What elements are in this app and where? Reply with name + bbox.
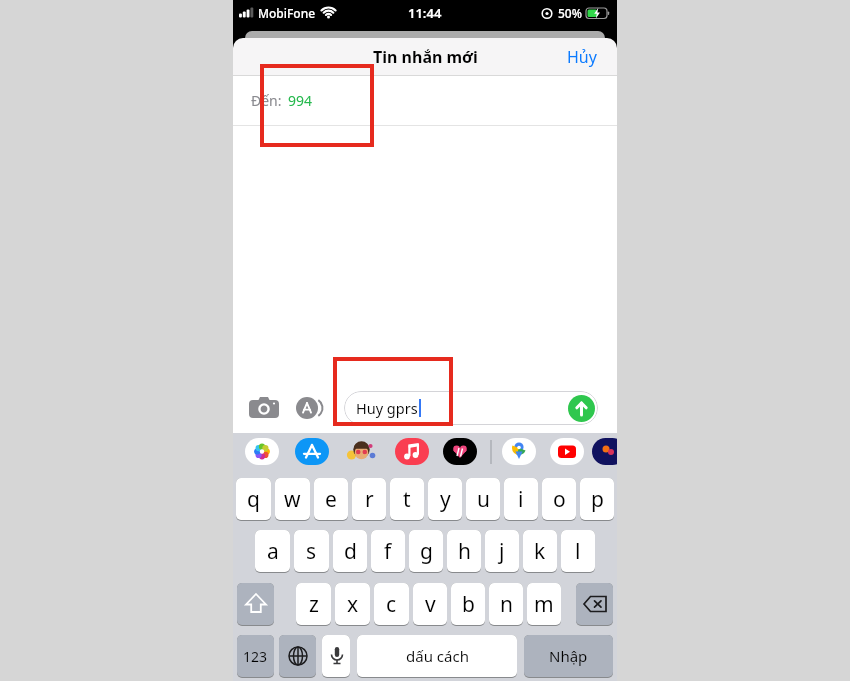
staticText: 50% (558, 5, 582, 21)
staticText: MobiFone (258, 5, 316, 21)
staticText: c (386, 590, 397, 619)
staticText: l (575, 537, 581, 566)
button[interactable]: o (542, 478, 576, 521)
button[interactable]: l (561, 530, 595, 573)
staticText: v (425, 590, 436, 619)
button[interactable] (237, 583, 274, 626)
button[interactable] (322, 635, 350, 678)
button[interactable]: t (390, 478, 424, 521)
staticText: y (440, 485, 451, 514)
staticText: w (284, 485, 301, 514)
staticText: u (477, 485, 490, 514)
staticText: p (591, 485, 604, 514)
staticText: Huy gprs (356, 398, 418, 418)
staticText: k (534, 537, 546, 566)
staticText: 994 (288, 91, 313, 110)
button[interactable]: y (428, 478, 462, 521)
button[interactable]: 123 (237, 635, 274, 678)
button[interactable]: dấu cách (357, 635, 517, 678)
staticText: 11:44 (408, 4, 442, 22)
staticText: z (309, 590, 319, 619)
button[interactable]: n (489, 583, 523, 626)
button[interactable]: i (504, 478, 538, 521)
button[interactable]: z (296, 583, 331, 626)
staticText: o (553, 485, 566, 514)
button[interactable] (344, 438, 378, 465)
button[interactable]: k (523, 530, 557, 573)
staticText: g (420, 537, 433, 566)
button[interactable]: Huy gprs (344, 391, 598, 425)
button[interactable] (296, 395, 327, 421)
button[interactable] (443, 438, 477, 465)
button[interactable] (295, 438, 329, 465)
staticText: Tin nhắn mới (373, 46, 478, 68)
staticText: Hủy (567, 46, 597, 68)
button[interactable]: b (451, 583, 485, 626)
staticText: f (384, 537, 392, 566)
staticText: n (500, 590, 513, 619)
button[interactable]: p (580, 478, 614, 521)
staticText: e (325, 485, 337, 514)
button[interactable]: w (275, 478, 310, 521)
button[interactable] (245, 438, 279, 465)
staticText: r (365, 485, 374, 514)
button[interactable]: c (374, 583, 409, 626)
staticText: j (499, 537, 505, 566)
staticText: q (247, 485, 260, 514)
staticText: s (306, 537, 317, 566)
button[interactable]: h (447, 530, 481, 573)
staticText: b (462, 590, 475, 619)
staticText: x (347, 590, 359, 619)
button[interactable] (249, 395, 279, 421)
staticText: Đến: (251, 91, 282, 110)
button[interactable] (395, 438, 429, 465)
button[interactable]: j (485, 530, 519, 573)
button[interactable]: u (466, 478, 500, 521)
staticText: m (534, 590, 554, 619)
button[interactable]: m (527, 583, 561, 626)
staticText: a (267, 537, 279, 566)
staticText: Nhập (549, 646, 588, 666)
button[interactable] (502, 438, 536, 465)
button[interactable] (568, 395, 595, 422)
button[interactable] (279, 635, 316, 678)
button[interactable]: s (294, 530, 329, 573)
button[interactable]: f (371, 530, 405, 573)
button[interactable] (576, 583, 613, 626)
button[interactable]: x (335, 583, 370, 626)
staticText: t (403, 485, 411, 514)
staticText: h (458, 537, 471, 566)
staticText: i (518, 485, 524, 514)
button[interactable]: a (255, 530, 290, 573)
button[interactable]: Hủy (567, 46, 597, 68)
button[interactable] (550, 438, 584, 465)
button[interactable]: Nhập (524, 635, 613, 678)
button[interactable]: q (236, 478, 271, 521)
button[interactable]: v (413, 583, 447, 626)
button[interactable]: d (333, 530, 367, 573)
button[interactable]: r (352, 478, 386, 521)
button[interactable]: Đến: (251, 76, 617, 125)
button[interactable] (592, 438, 617, 465)
button[interactable]: e (314, 478, 348, 521)
staticText: 123 (243, 647, 268, 666)
button[interactable]: g (409, 530, 443, 573)
staticText: d (344, 537, 357, 566)
staticText: dấu cách (406, 646, 469, 666)
